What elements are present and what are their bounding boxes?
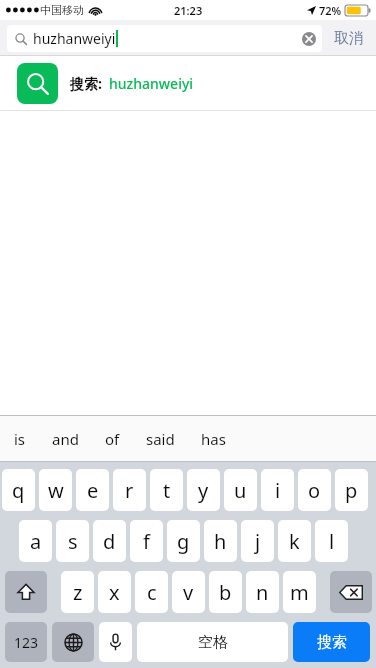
button[interactable]: p: [335, 469, 368, 511]
button[interactable]: w: [39, 469, 72, 511]
button[interactable]: said: [146, 429, 175, 449]
staticText: c: [147, 579, 157, 606]
button[interactable]: o: [298, 469, 331, 511]
staticText: z: [73, 579, 83, 606]
button[interactable]: 搜索: [293, 622, 370, 662]
button[interactable]: b: [209, 571, 242, 613]
staticText: a: [30, 528, 42, 555]
staticText: 21:23: [174, 3, 203, 18]
staticText: j: [255, 528, 261, 555]
staticText: of: [105, 429, 120, 449]
staticText: f: [143, 528, 150, 555]
button[interactable]: has: [201, 429, 226, 449]
staticText: n: [256, 579, 269, 606]
button[interactable]: j: [241, 520, 274, 562]
staticText: m: [290, 579, 309, 606]
button[interactable]: Shift: [5, 571, 47, 613]
button[interactable]: i: [261, 469, 294, 511]
button[interactable]: l: [315, 520, 348, 562]
button[interactable]: 搜索:: [0, 56, 376, 110]
staticText: t: [163, 477, 171, 504]
staticText: 中国移动: [40, 3, 84, 17]
staticText: b: [219, 579, 232, 606]
staticText: v: [183, 579, 194, 606]
button[interactable]: Clear text: [298, 28, 320, 50]
staticText: huzhanweiyi: [33, 29, 116, 48]
staticText: and: [52, 429, 79, 449]
button[interactable]: 空格: [137, 622, 288, 662]
staticText: said: [146, 429, 175, 449]
staticText: d: [103, 528, 116, 555]
button[interactable]: Voice input: [99, 622, 132, 662]
button[interactable]: e: [76, 469, 109, 511]
button[interactable]: 取消: [322, 20, 376, 56]
staticText: k: [289, 528, 300, 555]
staticText: 123: [14, 633, 39, 652]
button[interactable]: r: [113, 469, 146, 511]
staticText: r: [125, 477, 134, 504]
staticText: e: [87, 477, 99, 504]
staticText: u: [234, 477, 247, 504]
button[interactable]: n: [246, 571, 279, 613]
button[interactable]: 123: [5, 622, 47, 662]
button[interactable]: Backspace: [330, 571, 372, 613]
button[interactable]: c: [135, 571, 168, 613]
button[interactable]: q: [2, 469, 35, 511]
button[interactable]: v: [172, 571, 205, 613]
staticText: is: [14, 429, 26, 449]
button[interactable]: a: [19, 520, 52, 562]
staticText: h: [214, 528, 227, 555]
button[interactable]: x: [98, 571, 131, 613]
button[interactable]: is: [14, 429, 26, 449]
staticText: g: [177, 528, 190, 555]
button[interactable]: d: [93, 520, 126, 562]
button[interactable]: of: [105, 429, 120, 449]
button[interactable]: Switch keyboard: [52, 622, 94, 662]
button[interactable]: and: [52, 429, 79, 449]
button[interactable]: m: [283, 571, 316, 613]
staticText: p: [345, 477, 358, 504]
staticText: has: [201, 429, 226, 449]
staticText: w: [48, 477, 64, 504]
button[interactable]: y: [187, 469, 220, 511]
staticText: x: [109, 579, 120, 606]
staticText: i: [275, 477, 281, 504]
staticText: o: [308, 477, 321, 504]
staticText: q: [12, 477, 25, 504]
button[interactable]: t: [150, 469, 183, 511]
staticText: 搜索: [317, 633, 347, 652]
button[interactable]: f: [130, 520, 163, 562]
staticText: 搜索:: [70, 74, 102, 93]
button[interactable]: h: [204, 520, 237, 562]
button[interactable]: s: [56, 520, 89, 562]
staticText: 72%: [319, 3, 342, 18]
button[interactable]: u: [224, 469, 257, 511]
button[interactable]: g: [167, 520, 200, 562]
staticText: s: [68, 528, 78, 555]
staticText: 取消: [334, 29, 364, 48]
button[interactable]: z: [61, 571, 94, 613]
button[interactable]: k: [278, 520, 311, 562]
staticText: l: [329, 528, 335, 555]
staticText: y: [198, 477, 209, 504]
staticText: huzhanweiyi: [109, 74, 194, 93]
staticText: 空格: [198, 633, 228, 652]
button[interactable]: huzhanweiyi: [7, 25, 322, 52]
